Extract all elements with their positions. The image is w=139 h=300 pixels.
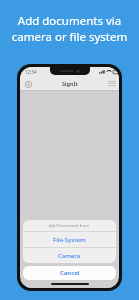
staticText: 12:34 bbox=[25, 69, 37, 75]
staticText: File-System bbox=[53, 236, 86, 244]
staticText: SignIt bbox=[62, 80, 78, 87]
staticText: Cancel bbox=[60, 269, 80, 277]
button[interactable]: Info bbox=[23, 79, 33, 89]
button[interactable]: More bbox=[108, 79, 116, 89]
staticText: Add documents via camera or file system bbox=[6, 13, 133, 44]
staticText: Add Document from bbox=[49, 223, 90, 229]
button[interactable]: File-System bbox=[23, 232, 116, 247]
button[interactable]: Camera bbox=[23, 248, 116, 263]
button[interactable]: Cancel bbox=[23, 266, 116, 280]
staticText: Camera bbox=[58, 252, 81, 260]
